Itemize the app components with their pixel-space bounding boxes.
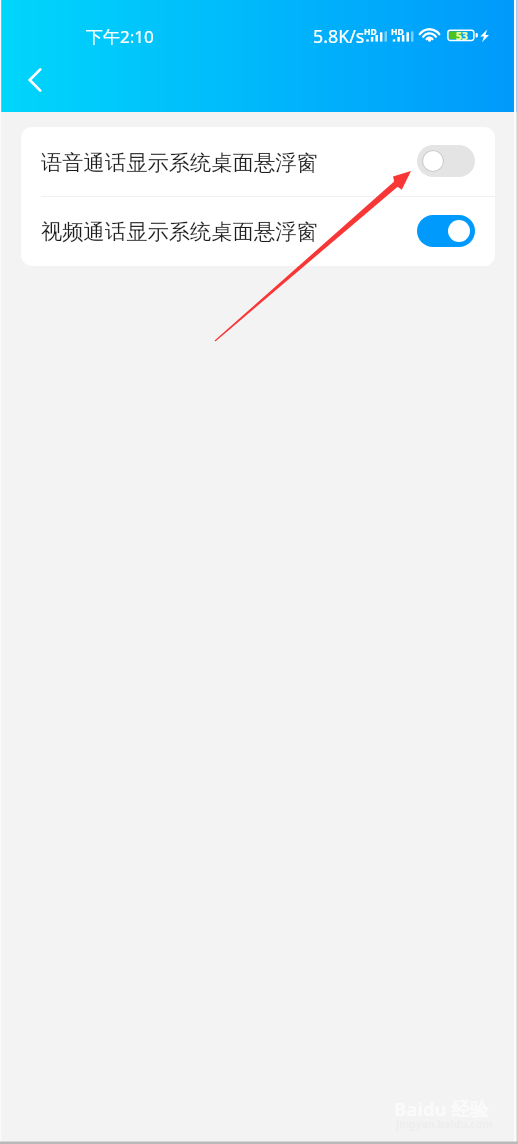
staticText: HD bbox=[391, 26, 404, 38]
button[interactable]: Disable bbox=[417, 215, 475, 247]
staticText: 5.8K/s bbox=[313, 24, 365, 48]
staticText: 53 bbox=[456, 29, 469, 43]
button[interactable]: Enable bbox=[417, 145, 475, 177]
staticText: 下午2:10 bbox=[86, 25, 154, 48]
staticText: Baidu 经验 bbox=[394, 1096, 489, 1121]
staticText: HD bbox=[364, 26, 377, 38]
button[interactable]: 视频通话显示系统桌面悬浮窗 bbox=[21, 196, 495, 266]
button[interactable]: 语音通话显示系统桌面悬浮窗 bbox=[21, 127, 495, 196]
button[interactable]: Back bbox=[13, 58, 57, 102]
staticText: 视频通话显示系统桌面悬浮窗 bbox=[41, 218, 318, 245]
staticText: 语音通话显示系统桌面悬浮窗 bbox=[41, 149, 318, 176]
